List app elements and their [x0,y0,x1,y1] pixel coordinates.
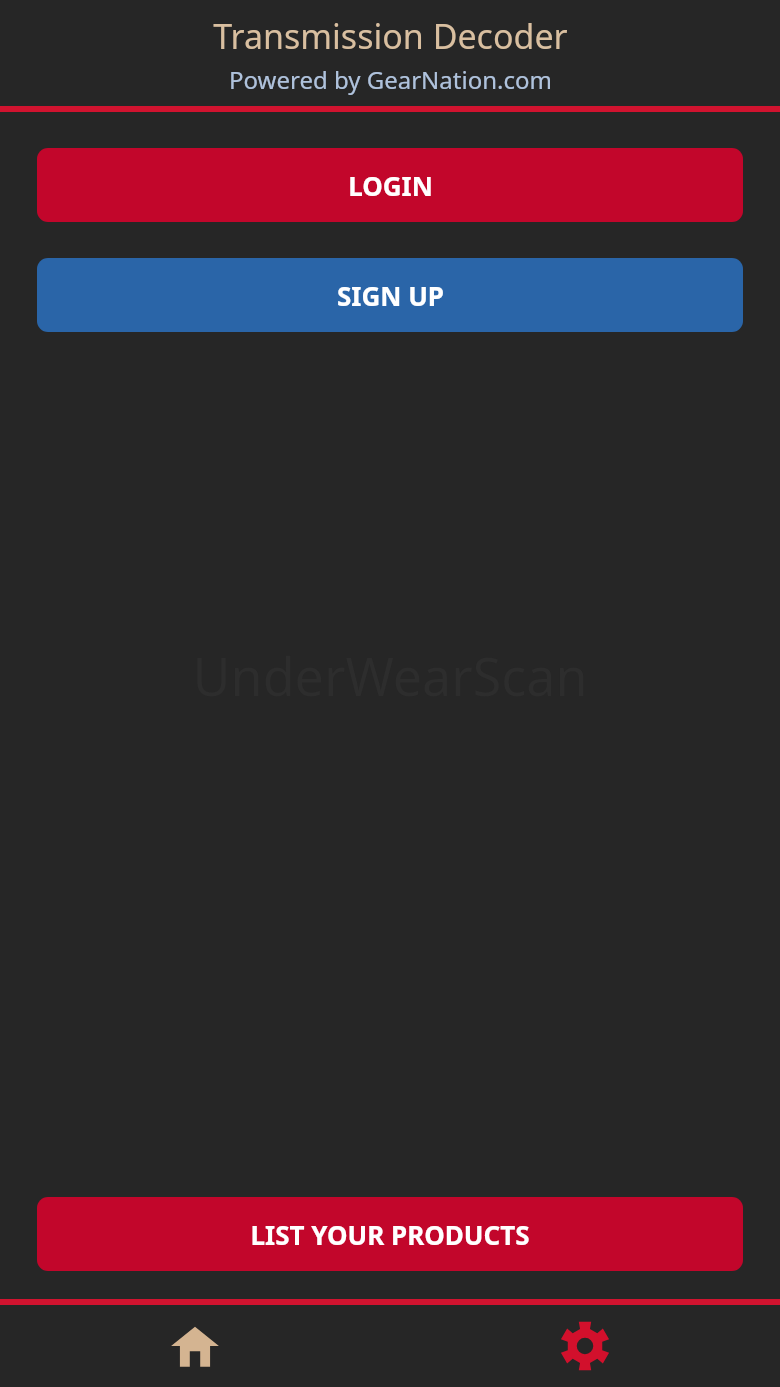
staticText: Powered by GearNation.com [229,63,552,96]
button[interactable]: LIST YOUR PRODUCTS [37,1197,743,1271]
staticText: LOGIN [348,168,433,203]
button[interactable]: SIGN UP [37,258,743,332]
button[interactable]: Home [0,1305,390,1387]
button[interactable]: Settings [390,1305,780,1387]
staticText: LIST YOUR PRODUCTS [250,1217,530,1252]
button[interactable]: LOGIN [37,148,743,222]
staticText: SIGN UP [337,278,444,313]
staticText: Transmission Decoder [213,13,568,59]
